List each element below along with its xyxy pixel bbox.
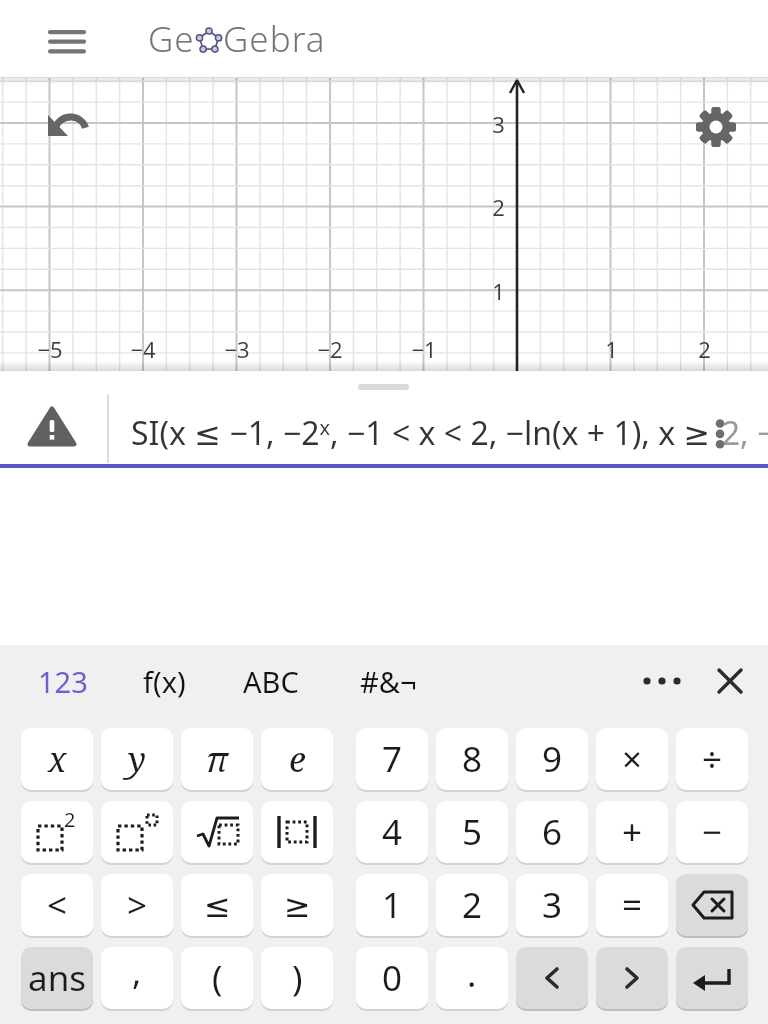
staticText: ( <box>212 954 223 1002</box>
button[interactable]: 1 <box>356 874 428 936</box>
staticText: 2 <box>462 881 483 929</box>
staticText: 1 <box>492 276 505 306</box>
staticText: Gebra <box>223 15 326 63</box>
staticText: −1 <box>411 334 437 364</box>
button[interactable]: x <box>21 728 93 790</box>
button[interactable] <box>40 104 94 144</box>
staticText: 5 <box>462 808 483 856</box>
button[interactable] <box>704 659 756 703</box>
button[interactable]: + <box>596 801 668 863</box>
button[interactable]: × <box>596 728 668 790</box>
staticText: 8 <box>462 735 483 783</box>
staticText: ≥ <box>284 887 311 924</box>
button[interactable] <box>101 801 173 863</box>
staticText: + <box>622 808 643 856</box>
button[interactable]: π <box>181 728 253 790</box>
button[interactable]: 0 <box>356 947 428 1009</box>
staticText: f(x) <box>143 662 186 701</box>
button[interactable]: , <box>101 947 173 1009</box>
button[interactable] <box>261 801 333 863</box>
button[interactable]: #&¬ <box>342 659 434 703</box>
button[interactable] <box>691 102 741 152</box>
staticText: . <box>467 950 477 998</box>
button[interactable]: 8 <box>436 728 508 790</box>
button[interactable]: Ge <box>148 0 408 78</box>
staticText: 4 <box>382 808 403 856</box>
staticText: < <box>47 881 68 929</box>
button[interactable]: − <box>676 801 748 863</box>
button[interactable]: 6 <box>516 801 588 863</box>
staticText: −3 <box>224 334 250 364</box>
button[interactable] <box>630 659 694 703</box>
button[interactable] <box>676 947 748 1009</box>
button[interactable]: = <box>596 874 668 936</box>
staticText: #&¬ <box>360 662 417 701</box>
staticText: 2 <box>64 806 76 833</box>
button[interactable]: y <box>101 728 173 790</box>
staticText: 2 <box>698 334 711 364</box>
button[interactable]: 5 <box>436 801 508 863</box>
staticText: 1 <box>382 881 403 929</box>
button[interactable]: ( <box>181 947 253 1009</box>
staticText: − <box>702 808 723 856</box>
staticText: 9 <box>542 735 563 783</box>
button[interactable]: ≥ <box>261 874 333 936</box>
button[interactable]: ≤ <box>181 874 253 936</box>
staticText: , <box>132 948 142 996</box>
staticText: −5 <box>37 334 63 364</box>
button[interactable]: < <box>21 874 93 936</box>
staticText: 3 <box>492 109 505 139</box>
button[interactable]: > <box>101 874 173 936</box>
staticText: 2 <box>492 192 505 222</box>
staticText: y <box>128 736 146 782</box>
button[interactable] <box>181 801 253 863</box>
button[interactable]: 7 <box>356 728 428 790</box>
staticText: > <box>127 881 148 929</box>
button[interactable]: ÷ <box>676 728 748 790</box>
button[interactable]: ABC <box>224 659 318 703</box>
staticText: x <box>48 736 67 782</box>
button[interactable]: ans <box>21 947 93 1009</box>
button[interactable]: ) <box>261 947 333 1009</box>
button[interactable]: 2 <box>436 874 508 936</box>
button[interactable] <box>16 403 88 451</box>
staticText: π <box>206 736 228 782</box>
button[interactable] <box>516 947 588 1009</box>
staticText: ÷ <box>702 735 723 783</box>
staticText: 6 <box>542 808 563 856</box>
staticText: ABC <box>243 662 299 701</box>
button[interactable]: 4 <box>356 801 428 863</box>
staticText: ≤ <box>204 887 231 924</box>
button[interactable]: 123 <box>25 659 101 703</box>
button[interactable]: 2 <box>21 801 93 863</box>
staticText: −4 <box>130 334 156 364</box>
button[interactable] <box>596 947 668 1009</box>
staticText: SI(x ≤ −1, −2x, −1 < x < 2, −ln(x + 1), … <box>131 411 768 455</box>
staticText: = <box>622 881 643 929</box>
staticText: e <box>289 736 306 782</box>
button[interactable]: . <box>436 947 508 1009</box>
staticText: Ge <box>148 15 195 63</box>
staticText: ans <box>28 954 87 1002</box>
button[interactable]: 9 <box>516 728 588 790</box>
button[interactable]: e <box>261 728 333 790</box>
button[interactable] <box>38 20 96 62</box>
staticText: × <box>622 735 643 783</box>
button[interactable] <box>676 874 748 936</box>
staticText: 123 <box>38 662 88 701</box>
staticText: 7 <box>382 735 403 783</box>
staticText: 0 <box>382 954 403 1002</box>
button[interactable]: f(x) <box>124 659 204 703</box>
staticText: −2 <box>317 334 343 364</box>
staticText: 1 <box>605 334 618 364</box>
staticText: 3 <box>542 881 563 929</box>
staticText: ) <box>292 954 303 1002</box>
button[interactable]: 3 <box>516 874 588 936</box>
